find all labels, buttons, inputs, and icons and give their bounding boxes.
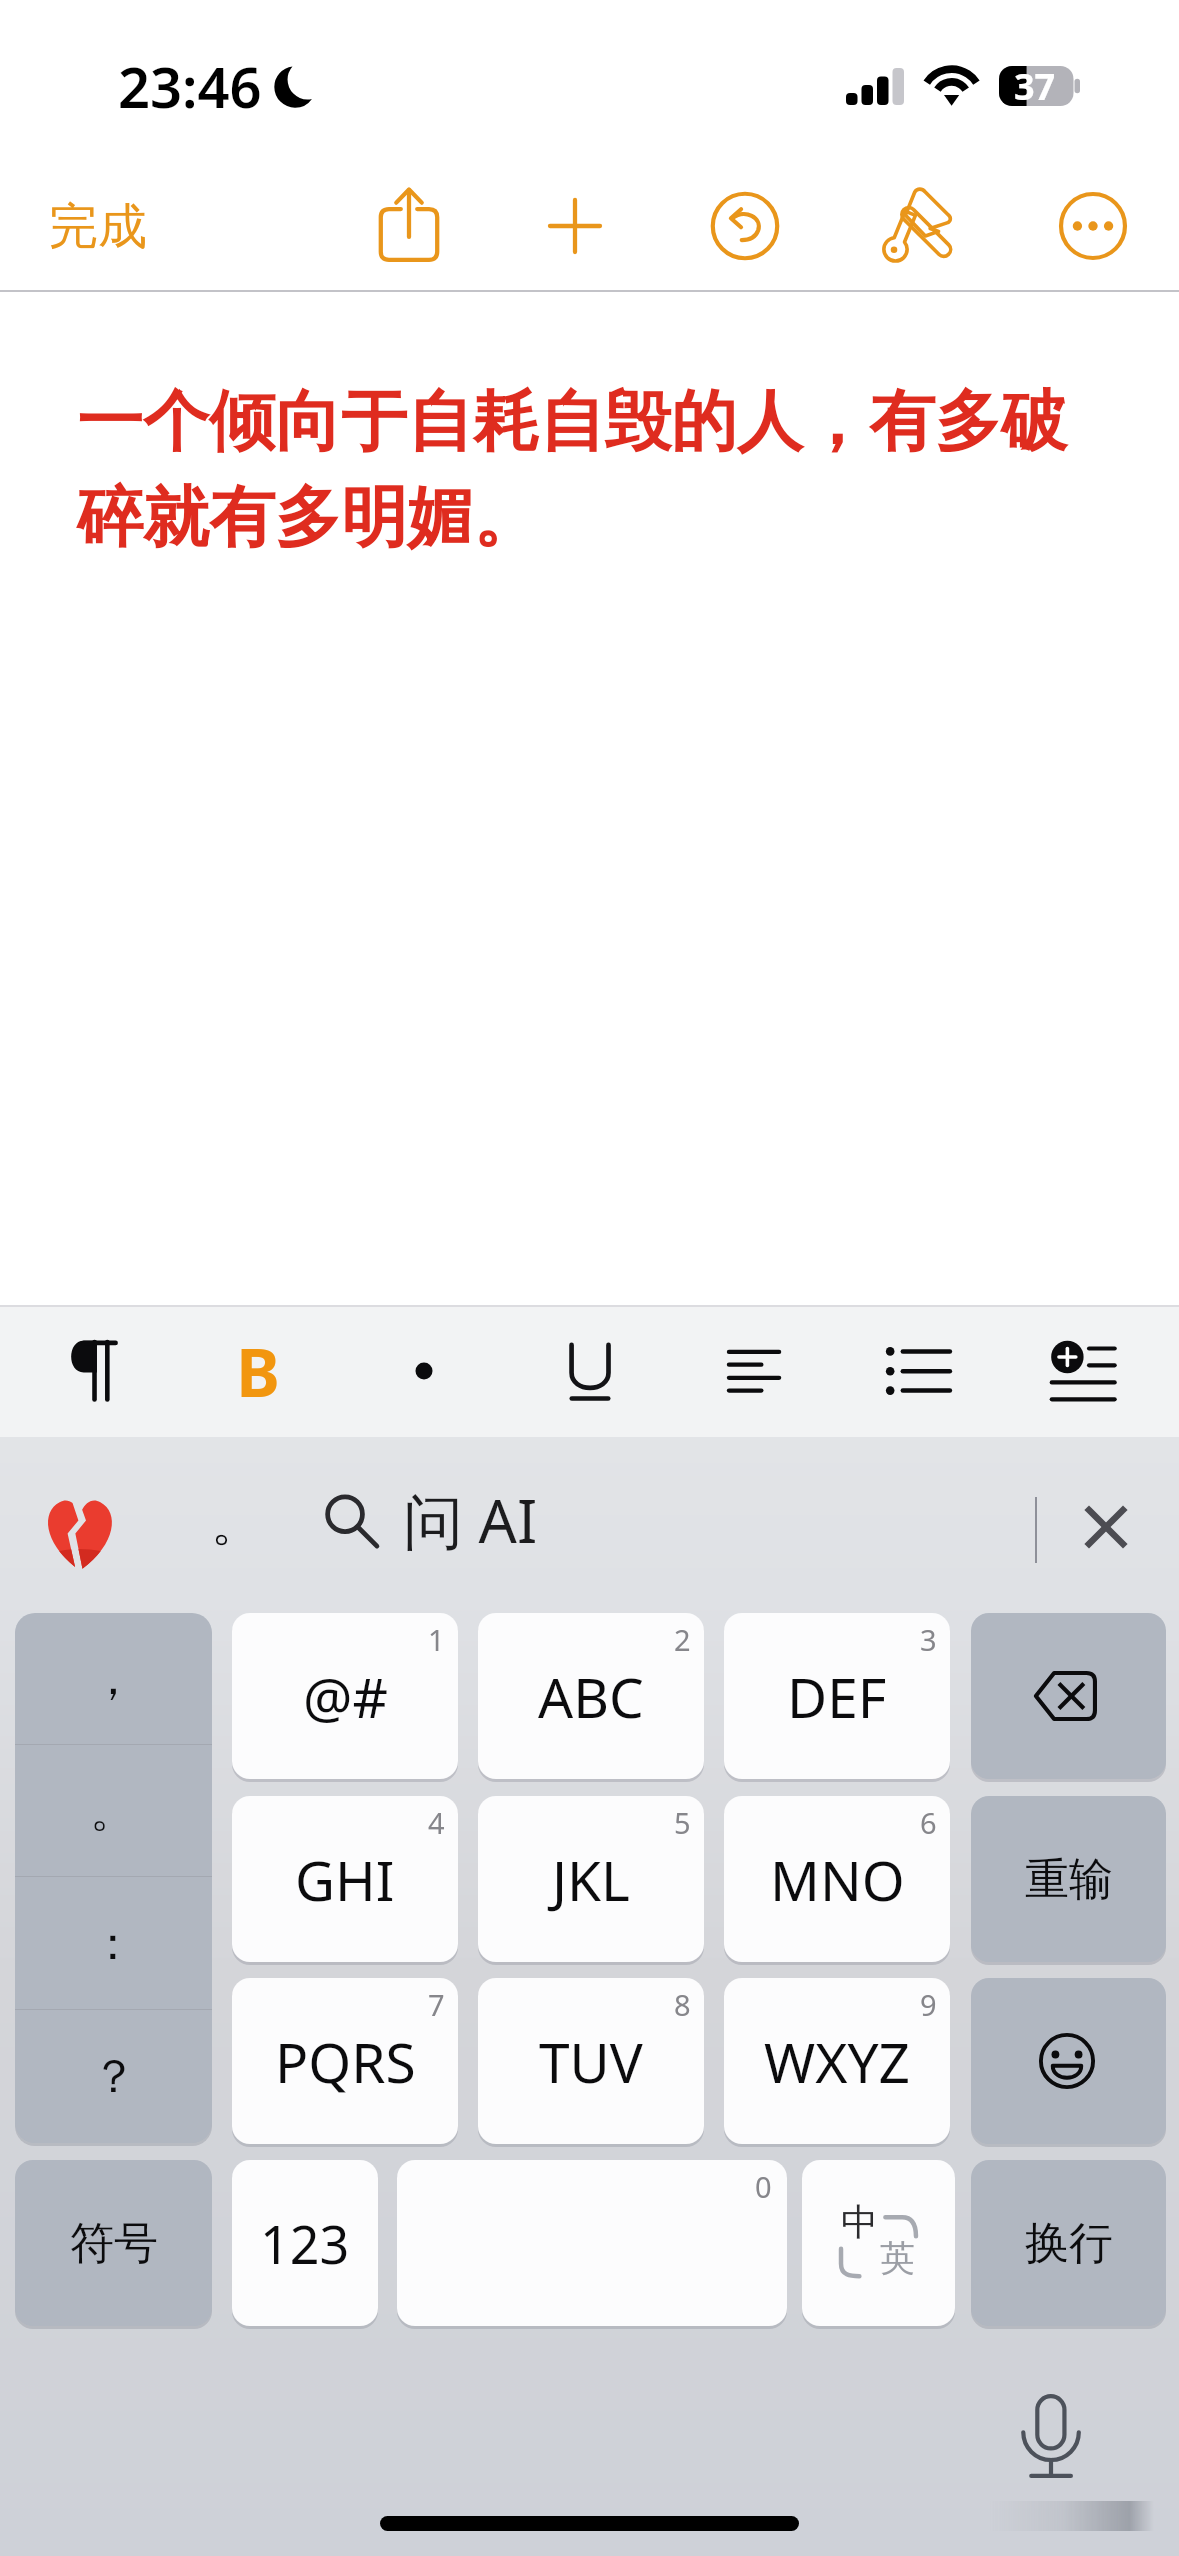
staticText: 6 [920, 1803, 937, 1842]
staticText: 8 [674, 1985, 691, 2024]
staticText: ： [90, 1915, 136, 1973]
button[interactable]: 重输 [971, 1796, 1166, 1962]
staticText: WXYZ [764, 2024, 910, 2099]
button[interactable]: ： [15, 1877, 212, 2010]
staticText: B [236, 1326, 280, 1416]
staticText: ？ [91, 2048, 137, 2106]
button[interactable]: GHI [232, 1796, 458, 1962]
button[interactable]: Align left [702, 1319, 806, 1423]
button[interactable]: MNO [724, 1796, 950, 1962]
button[interactable]: Close [1056, 1477, 1156, 1577]
button[interactable]: Insert [1031, 1319, 1135, 1423]
staticText: 换行 [1025, 2216, 1113, 2271]
staticText: 完成 [49, 196, 147, 258]
staticText: 5 [674, 1803, 691, 1842]
staticText: TUV [539, 2024, 643, 2099]
staticText: 一个倾向于自耗自毁的人，有多破碎就有多明媚。 [77, 380, 1107, 559]
button[interactable]: Paragraph style [42, 1319, 146, 1423]
button[interactable]: 123 [232, 2160, 378, 2326]
button[interactable]: PQRS [232, 1978, 458, 2144]
button[interactable]: 。 [15, 1745, 212, 1877]
button[interactable]: ？ [15, 2010, 212, 2143]
button[interactable]: 符号 [15, 2160, 212, 2326]
button[interactable]: Bullet list [866, 1319, 970, 1423]
staticText: 问 AI [403, 1479, 538, 1561]
staticText: GHI [295, 1842, 395, 1917]
button[interactable]: ， [15, 1613, 212, 1745]
button[interactable]: Share [357, 174, 461, 278]
button[interactable]: B [206, 1319, 310, 1423]
button[interactable]: ABC [478, 1613, 704, 1779]
staticText: 23:46 [118, 48, 262, 124]
button[interactable]: Chinese English toggle [802, 2160, 955, 2326]
button[interactable]: Bullet [372, 1319, 476, 1423]
staticText: DEF [787, 1659, 887, 1734]
button[interactable]: 换行 [971, 2160, 1166, 2326]
button[interactable]: JKL [478, 1796, 704, 1962]
staticText: 0 [755, 2167, 772, 2206]
staticText: JKL [552, 1842, 630, 1917]
staticText: 重输 [1025, 1852, 1113, 1907]
staticText: 。 [211, 1492, 261, 1555]
staticText: ， [90, 1650, 136, 1708]
button[interactable]: Dictation [1001, 2382, 1101, 2482]
staticText: 。 [90, 1782, 136, 1840]
button[interactable]: 。 [170, 1479, 262, 1571]
button[interactable]: Space [397, 2160, 787, 2326]
staticText: 1 [428, 1620, 445, 1659]
staticText: 3 [920, 1620, 937, 1659]
button[interactable]: 问 AI [313, 1477, 548, 1563]
staticText: 9 [920, 1985, 937, 2024]
button[interactable]: Markup [864, 174, 968, 278]
button[interactable]: Emoji [971, 1978, 1166, 2144]
button[interactable]: 完成 [35, 182, 161, 270]
button[interactable]: Underline [538, 1319, 642, 1423]
staticText: 7 [428, 1985, 445, 2024]
staticText: 123 [260, 2208, 350, 2279]
staticText: 4 [428, 1803, 445, 1842]
button[interactable]: Undo [693, 174, 797, 278]
button[interactable]: More [1041, 174, 1145, 278]
button[interactable]: DEF [724, 1613, 950, 1779]
button[interactable]: Add [523, 174, 627, 278]
button[interactable]: Backspace [971, 1613, 1166, 1779]
button[interactable]: WXYZ [724, 1978, 950, 2144]
staticText: 37 [1014, 62, 1056, 102]
staticText: 中 [841, 2199, 878, 2246]
staticText: MNO [770, 1842, 905, 1917]
button[interactable]: TUV [478, 1978, 704, 2144]
staticText: 符号 [70, 2216, 158, 2271]
staticText: 英 [880, 2236, 915, 2280]
staticText: ABC [538, 1659, 644, 1734]
button[interactable]: @# [232, 1613, 458, 1779]
staticText: 2 [674, 1620, 691, 1659]
staticText: PQRS [275, 2024, 416, 2099]
staticText: @# [303, 1659, 388, 1734]
button[interactable]: Broken heart emoji candidate [32, 1485, 128, 1581]
